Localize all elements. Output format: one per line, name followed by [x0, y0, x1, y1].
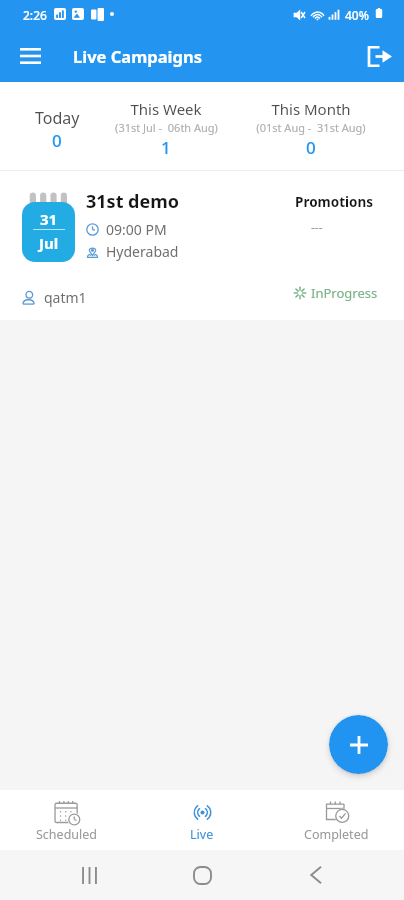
button[interactable]: Today [0, 82, 114, 170]
button[interactable]: Back [286, 850, 346, 900]
button[interactable]: Live [134, 790, 269, 850]
staticText: Jul [39, 233, 59, 253]
button[interactable]: Scheduled [0, 790, 134, 850]
button[interactable]: Recent apps [59, 850, 119, 900]
button[interactable]: Logout [354, 30, 404, 82]
staticText: 2:26 [23, 7, 47, 23]
staticText: Completed [304, 826, 369, 843]
staticText: Promotions [295, 193, 374, 211]
staticText: This Week [130, 99, 202, 119]
staticText: Hyderabad [106, 242, 179, 261]
staticText: (31st Jul - 06th Aug) [115, 120, 218, 135]
button[interactable]: This Week [114, 82, 218, 170]
button[interactable]: Home [172, 850, 232, 900]
button[interactable]: Add campaign [329, 715, 388, 774]
staticText: 31 [40, 209, 58, 229]
staticText: This Month [271, 99, 351, 119]
staticText: 1 [161, 136, 171, 159]
staticText: 40% [345, 7, 369, 23]
button[interactable]: 31 [0, 171, 404, 320]
button[interactable]: Menu [6, 30, 54, 82]
staticText: --- [311, 219, 323, 235]
staticText: 0 [52, 129, 62, 152]
staticText: 0 [306, 136, 316, 159]
staticText: InProgress [311, 284, 378, 302]
staticText: (01st Aug - 31st Aug) [256, 120, 366, 135]
staticText: 31st demo [86, 189, 180, 214]
staticText: qatm1 [44, 288, 87, 307]
staticText: 09:00 PM [106, 220, 167, 239]
staticText: Live Campaigns [73, 45, 202, 67]
staticText: Scheduled [36, 826, 98, 843]
staticText: Today [35, 107, 80, 129]
button[interactable]: Completed [269, 790, 404, 850]
button[interactable]: This Month [218, 82, 404, 170]
staticText: Live [190, 826, 214, 843]
